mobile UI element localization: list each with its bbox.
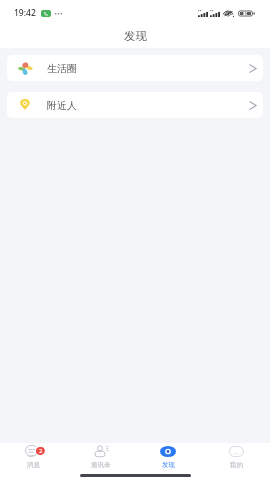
staticText: 19:42 (14, 7, 36, 19)
button[interactable]: 生活圈 (7, 55, 263, 81)
staticText: 生活圈 (47, 62, 77, 75)
staticText: 发现 (124, 29, 147, 43)
staticText: 消息 (27, 461, 40, 469)
button[interactable]: 我的 (202, 443, 270, 469)
button[interactable]: 通讯录 (67, 443, 134, 469)
staticText: 我的 (230, 461, 243, 469)
staticText: 发现 (162, 461, 175, 469)
staticText: 2 (39, 447, 43, 455)
button[interactable]: 发现 (134, 443, 202, 469)
button[interactable]: 附近人 (7, 92, 263, 118)
staticText: 通讯录 (91, 461, 111, 469)
button[interactable]: 2 (0, 443, 67, 469)
staticText: 附近人 (47, 99, 77, 112)
